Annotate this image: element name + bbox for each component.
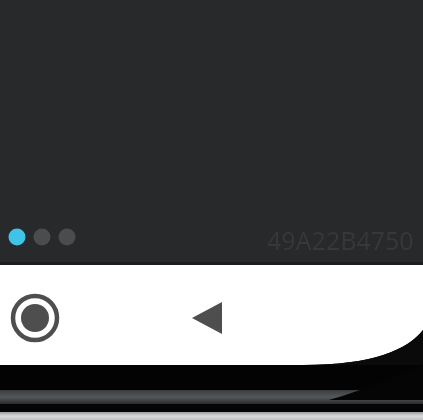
button[interactable]: Back <box>178 289 236 347</box>
button[interactable]: Home <box>6 289 64 347</box>
button[interactable]: App content <box>0 0 423 262</box>
